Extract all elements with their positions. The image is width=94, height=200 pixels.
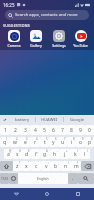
button[interactable]: 2	[10, 137, 20, 147]
button[interactable]: Settings	[48, 30, 69, 48]
staticText: .	[72, 175, 74, 182]
button[interactable]: 5	[40, 125, 49, 135]
button[interactable]: 7	[58, 137, 67, 147]
staticText: w	[13, 139, 17, 146]
staticText: ;	[58, 161, 59, 165]
staticText: 4	[36, 137, 38, 141]
button[interactable]: 6	[49, 137, 58, 147]
staticText: ?123	[1, 177, 8, 181]
button[interactable]: 2	[10, 125, 20, 135]
staticText: k	[74, 151, 77, 158]
button[interactable]: 6	[49, 125, 58, 135]
staticText: Google	[70, 117, 85, 123]
staticText: s	[16, 151, 19, 158]
staticText: 3	[24, 127, 27, 134]
staticText: z	[16, 163, 19, 170]
staticText: u	[61, 139, 65, 146]
staticText: n	[64, 163, 68, 170]
button[interactable]: Backspace	[81, 161, 94, 171]
button[interactable]: _	[31, 149, 40, 159]
button[interactable]: +	[60, 149, 70, 159]
staticText: -	[57, 149, 58, 153]
staticText: @	[9, 149, 12, 153]
staticText: 1	[4, 127, 7, 134]
staticText: 2	[16, 137, 18, 141]
button[interactable]: ?123	[0, 173, 9, 184]
staticText: YouTube	[73, 43, 88, 48]
button[interactable]: '	[31, 161, 41, 171]
button[interactable]: .	[68, 173, 78, 184]
staticText: 0	[88, 127, 91, 134]
button[interactable]: Shift	[0, 161, 13, 171]
button[interactable]: 9	[76, 137, 85, 147]
button[interactable]: )	[80, 149, 90, 159]
staticText: 7	[61, 127, 64, 134]
button[interactable]: ;	[51, 161, 61, 171]
button[interactable]: 8	[67, 137, 76, 147]
staticText: y	[52, 139, 55, 146]
button[interactable]: Recents	[63, 188, 93, 200]
button[interactable]: 5	[40, 137, 49, 147]
button[interactable]: -	[50, 149, 60, 159]
button[interactable]: $	[22, 149, 31, 159]
button[interactable]: English	[18, 173, 68, 184]
button[interactable]: @	[4, 149, 13, 159]
staticText: 16:25	[3, 2, 15, 8]
staticText: 8	[70, 127, 73, 134]
button[interactable]: *	[13, 161, 22, 171]
button[interactable]: 3	[20, 125, 30, 135]
button[interactable]: !	[61, 161, 71, 171]
button[interactable]: Google	[64, 115, 91, 124]
staticText: m	[74, 163, 79, 170]
staticText: 5	[43, 127, 46, 134]
staticText: Settings	[52, 43, 66, 48]
button[interactable]: Camera	[3, 30, 24, 48]
staticText: j	[64, 151, 66, 158]
staticText: 4	[34, 127, 37, 134]
staticText: f	[35, 151, 37, 158]
button[interactable]: 0	[85, 125, 94, 135]
button[interactable]: 9	[76, 125, 85, 135]
button[interactable]: battery	[9, 115, 35, 124]
button[interactable]: 4	[30, 137, 40, 147]
staticText: !	[68, 161, 69, 165]
button[interactable]: 8	[67, 125, 76, 135]
staticText: x	[25, 163, 28, 170]
button[interactable]: 1	[0, 125, 10, 135]
staticText: v	[45, 163, 48, 170]
button[interactable]: 3	[20, 137, 30, 147]
button[interactable]: Search apps, contacts and more	[5, 10, 89, 20]
button[interactable]: Back	[1, 188, 31, 200]
button[interactable]: Home	[32, 188, 62, 200]
button[interactable]: 0	[85, 137, 94, 147]
staticText: g	[43, 151, 47, 158]
staticText: 6	[52, 127, 55, 134]
button[interactable]: HUAWEI	[36, 115, 63, 124]
button[interactable]: Gallery	[25, 30, 46, 48]
button[interactable]: 1	[0, 137, 10, 147]
staticText: 8	[73, 137, 75, 141]
button[interactable]: (	[70, 149, 80, 159]
button[interactable]: Emoji	[9, 173, 18, 184]
staticText: 7	[64, 137, 66, 141]
staticText: Search apps, contacts and more	[15, 12, 78, 18]
staticText: #	[19, 149, 21, 153]
button[interactable]: 4	[30, 125, 40, 135]
staticText: "	[28, 161, 30, 165]
staticText: &	[46, 149, 48, 153]
staticText: '	[38, 161, 39, 165]
staticText: 6	[55, 137, 57, 141]
button[interactable]: ?	[71, 161, 81, 171]
button[interactable]: #	[13, 149, 22, 159]
staticText: o	[79, 139, 83, 146]
button[interactable]: &	[40, 149, 50, 159]
button[interactable]: :	[41, 161, 51, 171]
button[interactable]: 7	[58, 125, 67, 135]
button[interactable]: Search	[78, 173, 94, 184]
staticText: 2	[14, 127, 17, 134]
staticText: *	[19, 161, 21, 165]
staticText: 9	[82, 137, 84, 141]
staticText: 0	[91, 137, 93, 141]
button[interactable]: "	[22, 161, 31, 171]
button[interactable]: YouTube	[70, 30, 91, 48]
